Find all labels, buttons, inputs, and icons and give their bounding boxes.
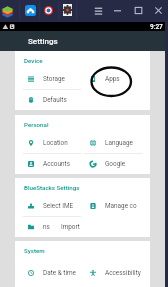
staticText: Storage bbox=[43, 75, 65, 83]
staticText: Accounts bbox=[43, 160, 70, 168]
staticText: Language bbox=[105, 139, 134, 147]
button[interactable]: Menu bbox=[93, 5, 104, 16]
staticText: Select IME bbox=[43, 202, 74, 210]
button[interactable]: Minimize bbox=[112, 5, 123, 16]
button[interactable]: Mute bbox=[44, 6, 53, 15]
staticText: Apps bbox=[105, 75, 120, 83]
button[interactable]: Apps bbox=[82, 69, 150, 89]
staticText: Defaults bbox=[43, 96, 67, 104]
button[interactable]: Defaults bbox=[15, 89, 82, 110]
staticText: System bbox=[24, 247, 45, 254]
button[interactable]: Settings bbox=[63, 4, 72, 16]
button[interactable]: BlueStacks bbox=[1, 3, 14, 17]
staticText: Device bbox=[24, 57, 43, 64]
button[interactable]: Storage bbox=[15, 69, 82, 89]
button[interactable]: Language bbox=[82, 133, 150, 153]
button[interactable]: Google bbox=[82, 153, 150, 174]
staticText: Accessibility bbox=[105, 269, 141, 277]
button[interactable]: Manage co bbox=[82, 196, 150, 216]
staticText: Manage co bbox=[105, 202, 137, 210]
button[interactable]: Accounts bbox=[15, 153, 82, 174]
staticText: Personal bbox=[24, 121, 49, 128]
staticText: Google bbox=[105, 160, 126, 168]
staticText: 9:27 bbox=[150, 23, 163, 31]
staticText: Date & time bbox=[43, 269, 76, 277]
staticText: Location bbox=[43, 139, 68, 147]
button[interactable]: ns Import bbox=[15, 216, 82, 237]
button[interactable]: Close bbox=[153, 5, 164, 16]
button[interactable]: Location bbox=[15, 133, 82, 153]
button[interactable]: Select IME bbox=[15, 196, 82, 216]
button[interactable]: Date & time bbox=[15, 259, 82, 287]
button[interactable]: Accessibility bbox=[82, 259, 150, 287]
staticText: ns Import bbox=[43, 223, 80, 231]
button[interactable]: Home bbox=[25, 5, 36, 16]
staticText: BlueStacks Settings bbox=[24, 184, 80, 191]
staticText: Settings bbox=[28, 37, 58, 46]
button[interactable]: Maximize bbox=[133, 5, 144, 16]
